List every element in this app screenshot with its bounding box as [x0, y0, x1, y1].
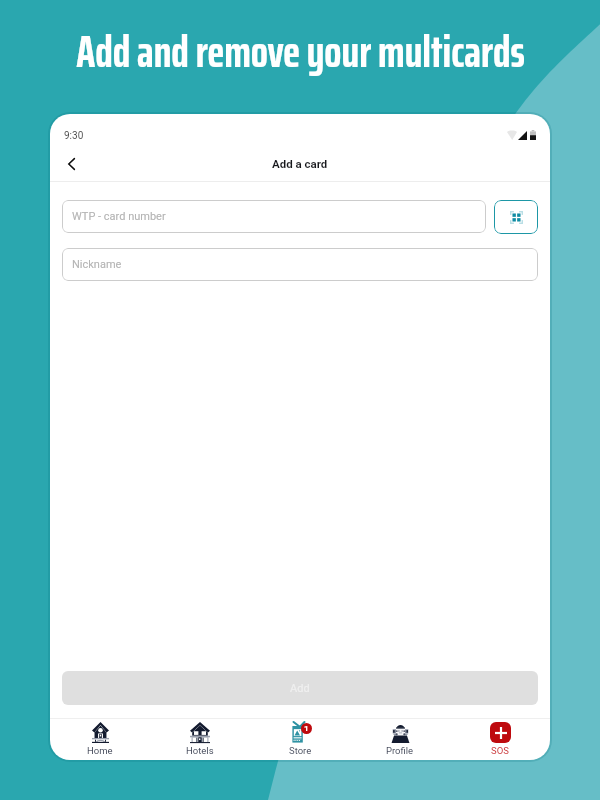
staticText: Add a card [272, 157, 328, 170]
staticText: 9:30 [64, 130, 84, 142]
button[interactable]: Profile [350, 719, 450, 760]
staticText: SOS [491, 745, 509, 756]
staticText: 1 [304, 724, 309, 733]
button[interactable]: Scan QR code [494, 200, 538, 234]
button[interactable]: WTP - card number [62, 200, 486, 233]
staticText: WTP - card number [72, 210, 166, 223]
button[interactable]: Hotels [150, 719, 250, 760]
button[interactable]: Home [50, 719, 150, 760]
staticText: Home [87, 745, 113, 756]
staticText: Store [289, 745, 312, 756]
staticText: Nickname [72, 258, 122, 271]
button[interactable]: Nickname [62, 248, 538, 281]
button[interactable]: 1 [250, 719, 350, 760]
staticText: Add and remove your multicards [76, 16, 525, 87]
staticText: Profile [386, 745, 414, 756]
staticText: Hotels [186, 745, 214, 756]
button[interactable]: SOS [450, 719, 550, 760]
staticText: Add [290, 682, 310, 695]
button[interactable]: Back [57, 150, 85, 178]
